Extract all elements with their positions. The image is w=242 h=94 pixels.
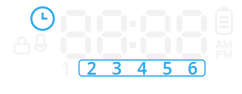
button[interactable]: Microphone	[34, 35, 48, 53]
staticText: 3	[112, 56, 122, 79]
staticText: AM	[215, 37, 232, 52]
staticText: 6	[187, 56, 197, 79]
button[interactable]: Clock	[31, 7, 54, 30]
staticText: 1	[61, 56, 71, 79]
staticText: 2	[87, 56, 97, 79]
staticText: 4	[137, 56, 147, 79]
staticText: 5	[162, 56, 172, 79]
button[interactable]: Lock	[14, 35, 29, 53]
staticText: PM	[215, 47, 232, 61]
